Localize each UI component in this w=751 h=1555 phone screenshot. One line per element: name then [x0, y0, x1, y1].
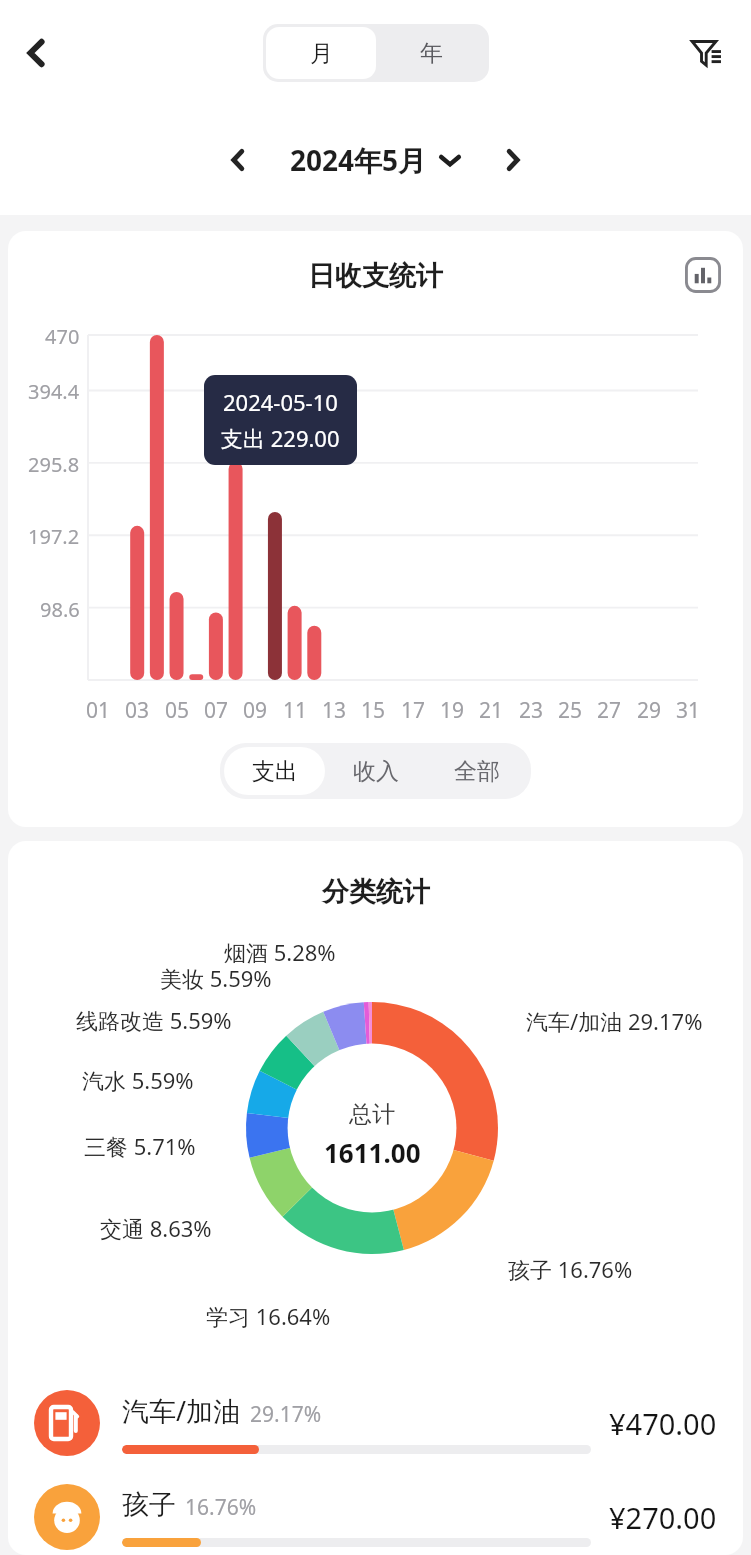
staticText: 07: [204, 696, 229, 725]
staticText: 收入: [353, 757, 399, 786]
staticText: 01: [86, 696, 111, 725]
button[interactable]: Back: [6, 23, 66, 83]
staticText: 19: [440, 696, 465, 725]
staticText: 支出: [252, 757, 298, 786]
staticText: 11: [283, 696, 308, 725]
staticText: 16.76%: [185, 1493, 257, 1522]
button[interactable]: 孩子: [8, 1484, 743, 1550]
staticText: ¥470.00: [609, 1404, 717, 1443]
staticText: 09: [243, 696, 268, 725]
staticText: 支出 229.00: [221, 423, 340, 453]
staticText: 总计: [349, 1100, 395, 1129]
staticText: 美妆 5.59%: [160, 963, 272, 993]
staticText: 日收支统计: [308, 259, 443, 293]
staticText: 29: [637, 696, 662, 725]
staticText: 23: [519, 696, 544, 725]
button[interactable]: 全部: [426, 747, 527, 795]
staticText: 2024年5月: [290, 141, 427, 179]
staticText: 98.6: [40, 596, 80, 623]
staticText: 13: [322, 696, 347, 725]
staticText: 25: [558, 696, 583, 725]
staticText: 全部: [454, 757, 500, 786]
button[interactable]: Next month: [483, 130, 543, 190]
staticText: 1611.00: [324, 1135, 421, 1170]
staticText: 03: [125, 696, 150, 725]
staticText: 15: [361, 696, 386, 725]
button[interactable]: 月: [266, 27, 376, 79]
staticText: 31: [676, 696, 701, 725]
staticText: 21: [479, 696, 504, 725]
staticText: 05: [165, 696, 190, 725]
staticText: 交通 8.63%: [100, 1213, 212, 1243]
staticText: 394.4: [28, 378, 80, 405]
staticText: 27: [597, 696, 622, 725]
button[interactable]: Chart type: [681, 253, 725, 297]
button[interactable]: 汽车/加油: [8, 1390, 743, 1456]
staticText: 学习 16.64%: [206, 1301, 331, 1331]
staticText: 2024-05-10: [223, 387, 338, 417]
button[interactable]: 收入: [325, 747, 426, 795]
staticText: 月: [310, 39, 333, 68]
staticText: 17: [401, 696, 426, 725]
staticText: 470: [45, 323, 80, 350]
button[interactable]: Filter: [679, 24, 737, 82]
button[interactable]: 支出: [224, 747, 325, 795]
staticText: 汽车/加油: [122, 1392, 241, 1429]
staticText: 年: [420, 39, 443, 68]
staticText: 孩子: [122, 1488, 176, 1522]
staticText: 烟酒 5.28%: [224, 937, 336, 967]
button[interactable]: Previous month: [208, 130, 268, 190]
button[interactable]: 年: [376, 27, 486, 79]
staticText: 三餐 5.71%: [84, 1131, 196, 1161]
staticText: 汽水 5.59%: [82, 1065, 194, 1095]
button[interactable]: 2024年5月: [268, 141, 483, 179]
staticText: 分类统计: [322, 875, 430, 909]
staticText: ¥270.00: [609, 1498, 717, 1537]
staticText: 孩子 16.76%: [508, 1254, 633, 1284]
staticText: 29.17%: [250, 1400, 322, 1429]
staticText: 295.8: [28, 451, 80, 478]
staticText: 汽车/加油 29.17%: [526, 1006, 703, 1036]
staticText: 线路改造 5.59%: [76, 1005, 232, 1035]
staticText: 197.2: [28, 523, 80, 550]
